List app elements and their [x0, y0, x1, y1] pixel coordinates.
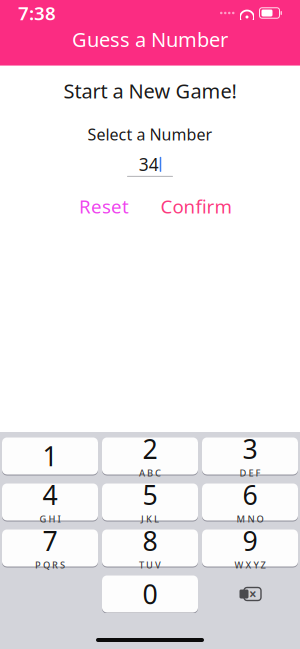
button[interactable]: 0	[102, 575, 198, 613]
button[interactable]: 6	[202, 483, 298, 521]
staticText: 7	[42, 523, 57, 558]
staticText: W X Y Z	[234, 559, 265, 571]
staticText: Select a Number	[87, 124, 212, 145]
staticText: P Q R S	[35, 559, 65, 571]
staticText: Reset	[79, 194, 129, 219]
button[interactable]: 3	[202, 437, 298, 475]
staticText: M N O	[236, 513, 263, 525]
staticText: 4	[42, 477, 57, 512]
staticText: 6	[242, 477, 257, 512]
button[interactable]: 4	[2, 483, 98, 521]
button[interactable]: Delete	[202, 575, 298, 613]
staticText: 1	[42, 438, 57, 474]
button[interactable]: 5	[102, 483, 198, 521]
staticText: 0	[142, 576, 157, 612]
staticText: 7:38	[18, 1, 56, 25]
button[interactable]: 9	[202, 529, 298, 567]
button[interactable]: 7	[2, 529, 98, 567]
staticText: Confirm	[160, 194, 231, 219]
staticText: 5	[142, 477, 157, 512]
staticText: 2	[142, 431, 157, 466]
button[interactable]: 2	[102, 437, 198, 475]
staticText: 3	[242, 431, 257, 466]
staticText: T U V	[139, 559, 161, 571]
button[interactable]: 8	[102, 529, 198, 567]
staticText: Guess a Number	[72, 26, 228, 53]
staticText: Start a New Game!	[63, 78, 236, 104]
staticText: 34	[139, 153, 159, 176]
button[interactable]: 1	[2, 437, 98, 475]
staticText: J K L	[141, 513, 159, 525]
staticText: A B C	[139, 467, 161, 479]
button[interactable]: Reset	[58, 186, 150, 227]
button[interactable]: Confirm	[150, 186, 242, 227]
staticText: 8	[142, 523, 157, 558]
staticText: G H I	[39, 513, 60, 525]
staticText: D E F	[239, 467, 260, 479]
staticText: 9	[242, 523, 257, 558]
staticText: ×	[249, 585, 257, 603]
